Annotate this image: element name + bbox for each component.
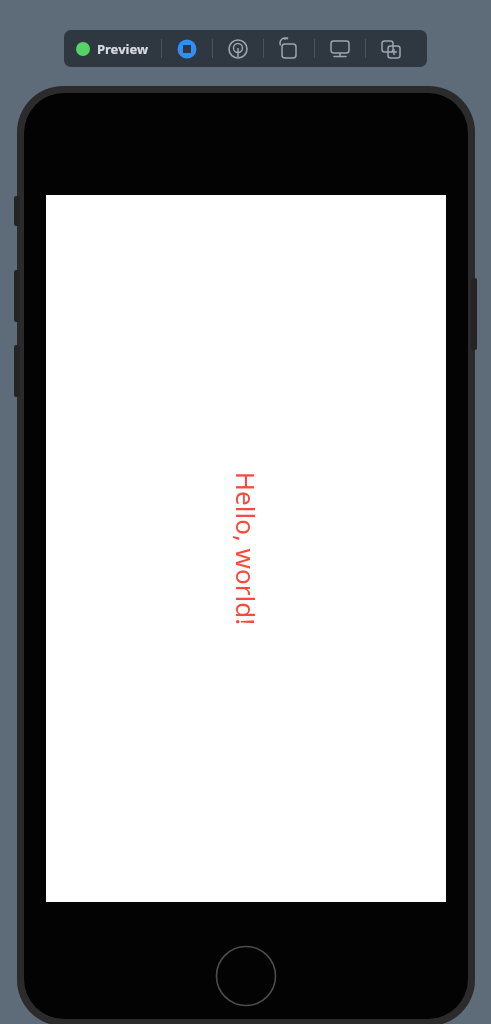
button[interactable]: Home — [215, 945, 277, 1007]
button[interactable]: Stop preview — [162, 30, 212, 67]
button[interactable]: Preview — [64, 30, 161, 67]
button[interactable]: Inspect — [213, 30, 263, 67]
button[interactable]: Rotate — [264, 30, 314, 67]
staticText: Hello, world! — [228, 471, 263, 625]
button[interactable]: Duplicate — [366, 30, 416, 67]
button[interactable]: Display settings — [315, 30, 365, 67]
staticText: Preview — [97, 40, 149, 58]
